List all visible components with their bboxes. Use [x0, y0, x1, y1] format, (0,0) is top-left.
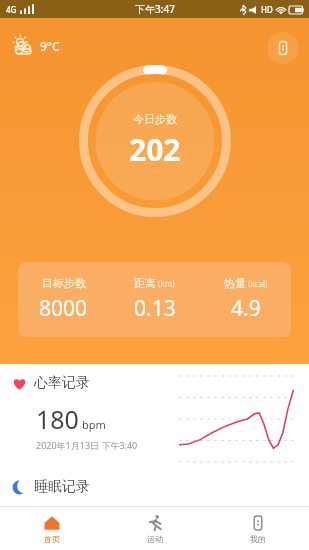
staticText: 下午3:47 [135, 2, 175, 16]
staticText: bpm [82, 417, 106, 432]
staticText: 睡眠记录 [34, 478, 90, 496]
button[interactable]: 目标步数 [18, 262, 291, 337]
staticText: 4.9 [231, 294, 261, 323]
staticText: 180 [36, 402, 79, 436]
button[interactable]: 我的 [206, 507, 309, 550]
staticText: 0.13 [134, 294, 176, 323]
button[interactable]: 首页 [0, 507, 103, 550]
staticText: 202 [129, 129, 181, 170]
staticText: 热量 [224, 276, 246, 290]
staticText: 目标步数 [42, 276, 86, 290]
staticText: (km) [158, 278, 175, 289]
staticText: 我的 [250, 534, 266, 544]
button[interactable]: 今日步数 [79, 65, 231, 217]
staticText: 今日步数 [133, 112, 177, 126]
button[interactable]: 睡眠记录 [0, 470, 309, 504]
staticText: 2020年1月13日 下午3:40 [36, 439, 138, 451]
staticText: 8000 [39, 294, 88, 323]
staticText: 首页 [44, 534, 60, 544]
staticText: 9°C [40, 38, 60, 54]
staticText: (kcal) [248, 278, 268, 289]
button[interactable]: 心率记录 [0, 364, 309, 470]
button[interactable]: 9°C [8, 30, 64, 62]
staticText: 运动 [147, 534, 163, 544]
staticText: HD [261, 4, 273, 15]
button[interactable]: 运动 [103, 507, 206, 550]
button[interactable]: My device [267, 32, 299, 64]
staticText: 4G [6, 4, 17, 15]
staticText: 心率记录 [34, 374, 90, 392]
staticText: 距离 [134, 276, 156, 290]
